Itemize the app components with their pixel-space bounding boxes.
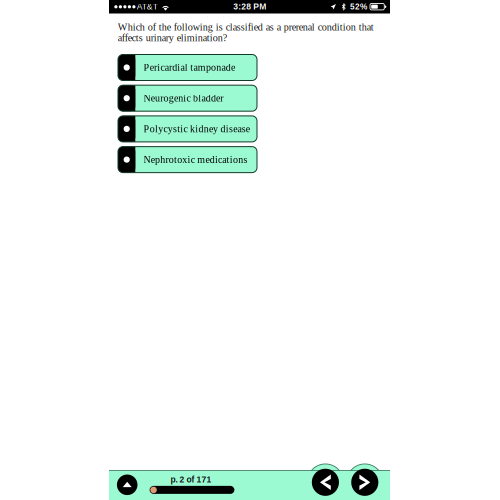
staticText: p. 2 of 171 [170,475,211,484]
button[interactable]: Nephrotoxic medications [118,147,257,173]
staticText: 52% [350,2,367,11]
staticText: Polycystic kidney disease [144,123,250,134]
staticText: Pericardial tamponade [144,62,235,73]
staticText: Neurogenic bladder [144,93,223,104]
button[interactable]: Neurogenic bladder [118,85,257,111]
staticText: affects urinary elimination? [118,32,227,43]
staticText: 3:28 PM [233,2,266,11]
staticText: Which of the following is classified as … [118,21,374,33]
button[interactable]: Next question [351,469,378,496]
button[interactable]: Scroll to top [117,474,137,495]
button[interactable]: Pericardial tamponade [118,54,257,80]
button[interactable]: Polycystic kidney disease [118,116,257,142]
staticText: AT&T [137,2,158,11]
staticText: Nephrotoxic medications [144,154,247,165]
button[interactable]: Previous question [312,469,339,496]
